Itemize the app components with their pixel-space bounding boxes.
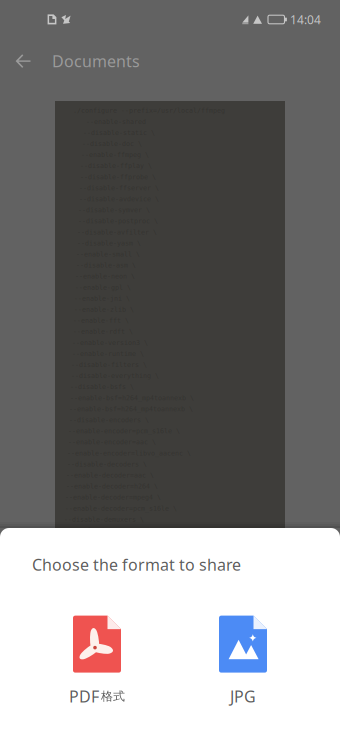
staticText: PDF <box>69 686 99 707</box>
button[interactable]: PDF <box>37 613 157 709</box>
staticText: 格式 <box>101 689 125 704</box>
staticText: 14:04 <box>290 11 321 27</box>
staticText: Documents <box>52 50 140 72</box>
button[interactable]: JPG <box>183 613 303 709</box>
staticText: --enable-demuxer=mov \ <box>64 527 152 534</box>
staticText: Choose the format to share <box>32 554 241 575</box>
button[interactable]: Back <box>5 43 41 79</box>
staticText: JPG <box>230 686 256 707</box>
